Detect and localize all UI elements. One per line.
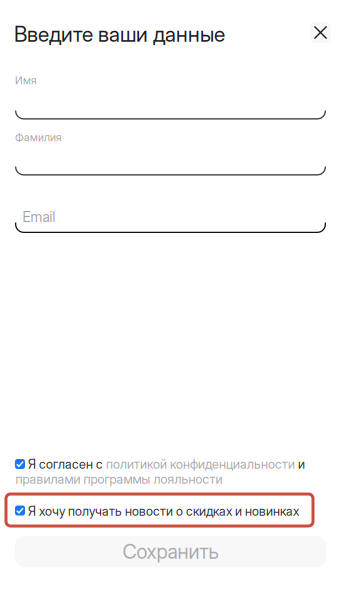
- staticText: Сохранить: [122, 540, 218, 563]
- staticText: Введите ваши данные: [14, 21, 225, 47]
- button[interactable]: Close: [310, 22, 331, 43]
- staticText: и: [295, 456, 305, 472]
- staticText: правилами программы лояльности: [15, 471, 222, 487]
- staticText: Email: [22, 208, 55, 225]
- button[interactable]: Я согласен с: [15, 455, 327, 487]
- button[interactable]: Сохранить: [15, 536, 326, 567]
- staticText: Я хочу получать новости о скидках и нови…: [28, 503, 299, 519]
- staticText: Фамилия: [15, 131, 62, 144]
- button[interactable]: Я хочу получать новости о скидках и нови…: [6, 494, 313, 526]
- staticText: Имя: [15, 74, 37, 87]
- staticText: Я согласен с: [28, 456, 106, 472]
- staticText: политикой конфиденциальности: [106, 456, 295, 472]
